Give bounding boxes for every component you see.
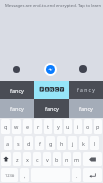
button[interactable]: b: [53, 152, 61, 166]
button[interactable]: w: [12, 119, 21, 134]
button[interactable]: o: [84, 119, 92, 134]
button[interactable]: Messenger: [44, 63, 57, 76]
button[interactable]: f a n c y: [69, 81, 103, 99]
staticText: u: [66, 123, 70, 130]
button[interactable]: k: [79, 136, 88, 150]
button[interactable]: a: [4, 136, 12, 150]
staticText: 🅵🅰🅽🅲🆈: [39, 87, 65, 93]
staticText: e: [26, 123, 30, 130]
button[interactable]: Enter: [83, 168, 102, 182]
staticText: j: [72, 140, 74, 147]
button[interactable]: z: [13, 152, 21, 166]
button[interactable]: 🅵🅰🅽🅲🆈: [34, 81, 69, 99]
button[interactable]: Backspace: [83, 152, 102, 166]
button[interactable]: Shift: [1, 152, 11, 166]
button[interactable]: fancy: [0, 99, 34, 118]
button[interactable]: q: [1, 119, 10, 134]
staticText: fancy: [79, 105, 93, 112]
button[interactable]: e: [23, 119, 32, 134]
staticText: o: [86, 123, 90, 130]
button[interactable]: 123#: [1, 168, 18, 182]
staticText: fancy: [10, 105, 24, 112]
button[interactable]: fancy: [69, 99, 103, 118]
button[interactable]: fancy: [0, 81, 34, 99]
button[interactable]: l: [90, 136, 99, 150]
staticText: v: [46, 156, 49, 163]
staticText: .: [76, 172, 78, 179]
staticText: c: [36, 156, 39, 163]
staticText: m: [74, 156, 80, 163]
button[interactable]: Contact avatar: [13, 66, 20, 73]
staticText: g: [49, 140, 53, 147]
button[interactable]: u: [64, 119, 72, 134]
button[interactable]: fancy: [34, 99, 69, 118]
button[interactable]: m: [73, 152, 81, 166]
staticText: a: [6, 140, 10, 147]
staticText: ,: [24, 172, 26, 179]
staticText: f: [39, 140, 41, 147]
button[interactable]: d: [24, 136, 33, 150]
staticText: n: [65, 156, 69, 163]
button[interactable]: ,: [20, 168, 29, 182]
button[interactable]: s: [14, 136, 22, 150]
staticText: x: [26, 156, 29, 163]
staticText: b: [55, 156, 59, 163]
button[interactable]: p: [94, 119, 102, 134]
button[interactable]: Contact avatar: [79, 65, 87, 73]
button[interactable]: n: [63, 152, 71, 166]
button[interactable]: i: [74, 119, 82, 134]
staticText: s: [17, 140, 20, 147]
staticText: fancy: [10, 87, 24, 94]
staticText: t: [47, 123, 49, 130]
button[interactable]: j: [68, 136, 77, 150]
staticText: y: [57, 123, 60, 130]
staticText: f a n c y: [77, 87, 95, 94]
staticText: 123#: [5, 173, 15, 178]
staticText: Messages are end-to-end encrypted. Tap t…: [5, 3, 103, 9]
staticText: r: [37, 123, 40, 130]
button[interactable]: y: [54, 119, 62, 134]
button[interactable]: x: [23, 152, 31, 166]
staticText: k: [82, 140, 85, 147]
staticText: z: [16, 156, 19, 163]
staticText: l: [94, 140, 96, 147]
button[interactable]: t: [44, 119, 52, 134]
button[interactable]: c: [33, 152, 41, 166]
staticText: h: [60, 140, 64, 147]
staticText: p: [96, 123, 100, 130]
staticText: w: [14, 123, 19, 130]
button[interactable]: v: [43, 152, 51, 166]
button[interactable]: h: [57, 136, 66, 150]
staticText: i: [77, 123, 79, 130]
button[interactable]: .: [72, 168, 81, 182]
staticText: q: [4, 123, 8, 130]
button[interactable]: f: [35, 136, 44, 150]
button[interactable]: g: [46, 136, 55, 150]
button[interactable]: r: [34, 119, 42, 134]
staticText: d: [27, 140, 31, 147]
staticText: fancy: [45, 105, 59, 112]
